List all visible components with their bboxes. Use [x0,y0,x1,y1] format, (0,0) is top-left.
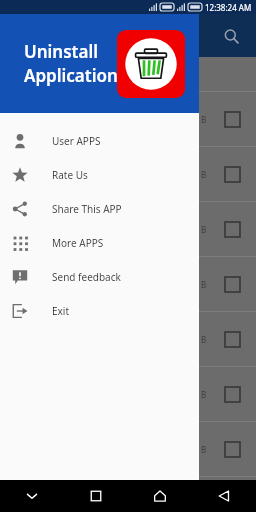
staticText: B [201,224,207,235]
button[interactable]: Send feedback [0,260,199,294]
button[interactable]: More APPS [0,226,199,260]
staticText: More APPS [52,236,104,250]
button[interactable]: B [0,92,256,146]
button[interactable]: B [0,202,256,256]
button[interactable]: B [0,367,256,421]
button[interactable]: User APPS [0,124,199,158]
staticText: Application [24,64,118,87]
staticText: User APPS [52,134,101,148]
staticText: B [201,334,207,345]
button[interactable]: B [0,257,256,311]
staticText: B [201,114,207,125]
staticText: B [201,444,207,455]
button[interactable]: Search [216,21,246,51]
staticText: Share This APP [52,202,122,216]
staticText: B [201,279,207,290]
button[interactable]: Share This APP [0,192,199,226]
button[interactable]: Recents [64,480,128,512]
staticText: Uninstall [24,40,99,63]
staticText: B [201,169,207,180]
button[interactable]: B [0,147,256,201]
staticText: Send feedback [52,270,121,284]
button[interactable]: B [0,477,256,512]
staticText: B [201,389,207,400]
button[interactable]: B [0,422,256,476]
button[interactable]: Rate Us [0,158,199,192]
staticText: 12:38:24 AM [205,2,252,13]
staticText: Rate Us [52,168,88,182]
button[interactable]: B [0,312,256,366]
other: Uninstall application icon [117,30,185,98]
button[interactable]: Exit [0,294,199,328]
button[interactable]: Hide keyboard [0,480,64,512]
staticText: Exit [52,304,70,318]
button[interactable]: Back [192,480,256,512]
button[interactable]: Home [128,480,192,512]
